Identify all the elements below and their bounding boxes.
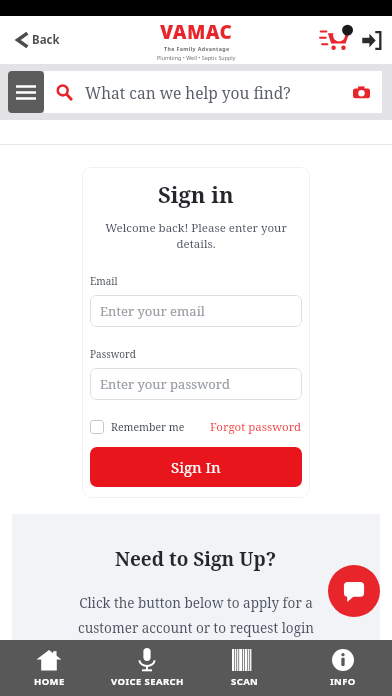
staticText: Enter your email xyxy=(100,302,205,320)
button[interactable]: Sign in xyxy=(361,30,382,51)
button[interactable]: Remember me xyxy=(90,420,185,434)
staticText: Remember me xyxy=(111,420,185,434)
staticText: SCAN xyxy=(231,675,259,688)
staticText: VOICE SEARCH xyxy=(111,675,184,688)
button[interactable]: Enter your email xyxy=(90,295,302,327)
staticText: Sign In xyxy=(171,457,221,477)
staticText: Need to Sign Up? xyxy=(115,546,277,572)
staticText: Enter your password xyxy=(100,375,230,393)
staticText: What can we help you find? xyxy=(85,82,291,103)
staticText: Click the button below to apply for a cu… xyxy=(78,594,314,661)
staticText: Welcome back! Please enter your details. xyxy=(88,220,304,252)
button[interactable]: Enter your password xyxy=(90,368,302,400)
staticText: HOME xyxy=(34,675,65,688)
button[interactable]: Forgot password xyxy=(210,419,302,435)
staticText: Email xyxy=(90,274,118,288)
button[interactable]: Menu xyxy=(8,71,44,113)
staticText: Sign in xyxy=(158,179,234,209)
staticText: Forgot password xyxy=(210,419,302,435)
button[interactable]: HOME xyxy=(0,640,98,696)
button[interactable]: Back xyxy=(12,26,64,54)
button[interactable]: VOICE SEARCH xyxy=(98,640,196,696)
staticText: INFO xyxy=(330,675,356,688)
staticText: VAMAC xyxy=(160,19,233,45)
button[interactable]: Sign In xyxy=(90,447,302,487)
button[interactable]: INFO xyxy=(294,640,392,696)
staticText: Password xyxy=(90,347,136,361)
button[interactable]: SCAN xyxy=(196,640,294,696)
button[interactable]: Search by photo xyxy=(353,84,370,101)
button[interactable]: Open chat xyxy=(328,565,380,617)
button[interactable]: Cart, 0 items xyxy=(320,27,354,53)
button[interactable]: What can we help you find? xyxy=(44,71,382,113)
staticText: Plumbing • Well • Septic Supply xyxy=(157,54,236,61)
staticText: The Family Advantage xyxy=(164,45,230,52)
staticText: Back xyxy=(32,32,60,48)
